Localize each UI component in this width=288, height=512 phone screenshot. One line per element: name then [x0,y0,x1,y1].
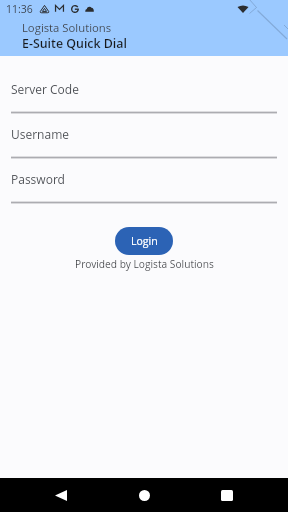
button[interactable]: Server Code [11,69,277,114]
button[interactable]: Home [114,478,174,512]
staticText: Server Code [11,81,79,97]
button[interactable]: Login [115,227,173,255]
staticText: Login [131,234,158,248]
staticText: Provided by Logista Solutions [75,257,214,271]
staticText: 11:36 [6,2,33,16]
button[interactable]: Password [11,159,277,204]
button[interactable]: Recent apps [197,478,257,512]
button[interactable]: Back [32,478,89,512]
button[interactable]: Username [11,114,277,159]
staticText: Username [11,126,70,142]
staticText: E-Suite Quick Dial [22,35,127,52]
staticText: Logista Solutions [22,20,112,35]
staticText: Password [11,171,65,187]
